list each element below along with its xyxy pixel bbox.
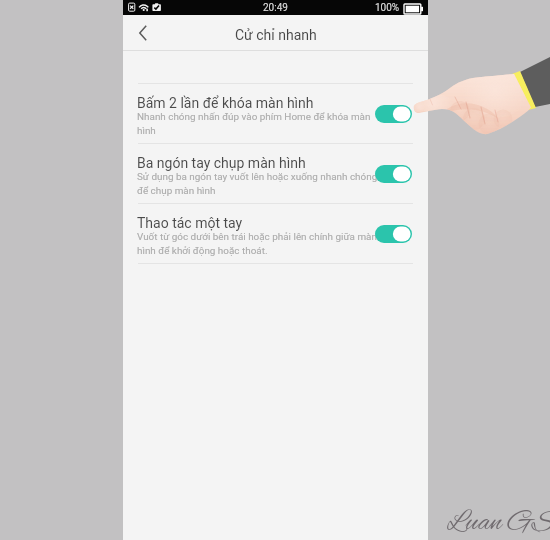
staticText: 20:49 — [263, 2, 288, 14]
staticText: Nhanh chóng nhấn đúp vào phím Home để kh… — [137, 111, 379, 136]
button[interactable]: Toggle setting, on — [375, 105, 412, 123]
button[interactable]: Toggle setting, on — [375, 225, 412, 243]
staticText: Cử chỉ nhanh — [235, 27, 317, 43]
staticText: Vuốt từ góc dưới bên trái hoặc phải lên … — [137, 231, 379, 256]
staticText: 100% — [375, 2, 400, 14]
staticText: Luan GS — [447, 505, 550, 540]
staticText: Sử dụng ba ngón tay vuốt lên hoặc xuống … — [137, 171, 379, 196]
button[interactable]: Back — [127, 17, 159, 49]
staticText: Thao tác một tay — [137, 215, 243, 231]
button[interactable]: Thao tác một tay — [123, 204, 428, 264]
staticText: Bấm 2 lần để khóa màn hình — [137, 95, 314, 111]
button[interactable]: Ba ngón tay chụp màn hình — [123, 144, 428, 204]
button[interactable]: Bấm 2 lần để khóa màn hình — [123, 84, 428, 144]
staticText: Ba ngón tay chụp màn hình — [137, 155, 306, 171]
button[interactable]: Toggle setting, on — [375, 165, 412, 183]
